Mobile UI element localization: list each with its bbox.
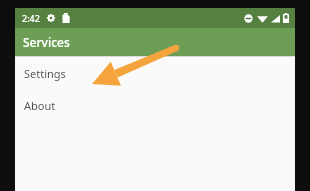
staticText: Settings — [24, 66, 66, 81]
other: Annotation arrow — [0, 0, 310, 191]
staticText: 2:42 — [22, 12, 40, 24]
button[interactable]: About — [15, 89, 295, 121]
staticText: Services — [23, 34, 70, 50]
button[interactable]: Settings — [15, 57, 295, 89]
staticText: About — [24, 98, 56, 113]
